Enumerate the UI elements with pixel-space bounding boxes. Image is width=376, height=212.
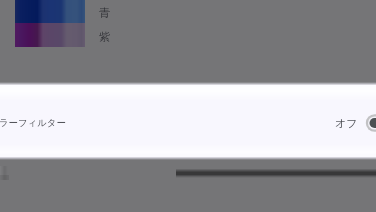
staticText: オフ xyxy=(335,116,358,130)
staticText: 青 xyxy=(99,6,111,20)
staticText: 紫 xyxy=(99,30,111,44)
button[interactable]: カラーフィルター オフ xyxy=(330,85,376,157)
button[interactable]: ラーフィルター xyxy=(0,85,376,157)
staticText: ラーフィルター xyxy=(0,117,66,129)
